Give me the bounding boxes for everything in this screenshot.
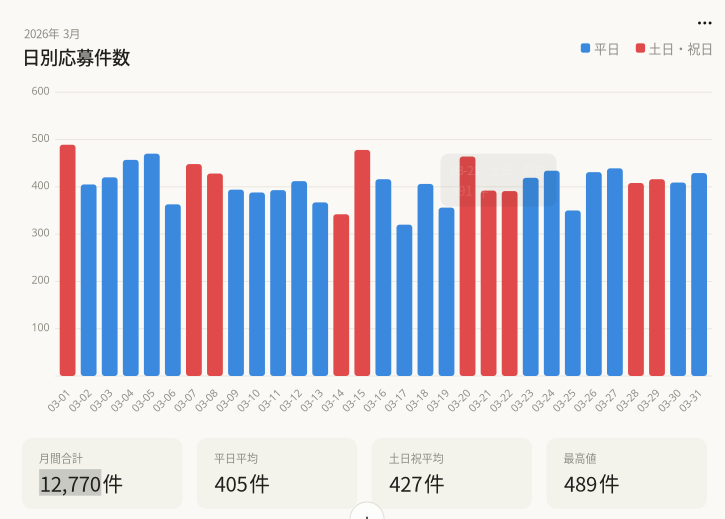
staticText: 件 [599,468,620,498]
staticText: 土日・祝日 [649,39,714,57]
staticText: 03-23 [508,393,535,407]
staticText: 03-12 [277,393,304,407]
staticText: 405 [214,468,247,498]
staticText: 600 [31,83,49,98]
staticText: 03-05 [129,393,156,407]
staticText: 03-15 [340,393,367,407]
staticText: 最高値 [563,450,596,466]
staticText: 03-17 [382,393,409,407]
staticText: 03-27 [592,393,619,407]
staticText: 03-16 [361,393,388,407]
staticText: 03-21 土日・祝日 [452,162,546,178]
button[interactable]: 月間合計 [22,438,182,509]
staticText: 03-18 [403,393,430,407]
button[interactable]: 最高値 [546,438,707,509]
button[interactable]: 土日・祝日 [636,38,725,58]
button[interactable]: 平日平均 [197,438,357,509]
staticText: 03-10 [235,393,262,407]
staticText: 件 [249,468,270,498]
button[interactable]: 下へスクロール [347,499,387,519]
staticText: 件 [102,468,123,498]
staticText: 03-26 [571,393,598,407]
staticText: 03-06 [150,393,177,407]
staticText: 03-22 [487,393,514,407]
staticText: 500 [31,131,49,145]
staticText: 400 [31,178,49,192]
staticText: 391 件 [452,181,489,199]
staticText: 300 [31,225,49,239]
staticText: 03-13 [298,393,325,407]
staticText: 03-29 [635,393,662,407]
staticText: 03-30 [656,393,683,407]
staticText: 03-04 [108,393,135,407]
staticText: 03-20 [445,393,472,407]
staticText: 03-28 [614,393,641,407]
staticText: 03-19 [424,393,451,407]
staticText: 平日平均 [214,450,258,466]
staticText: 日別応募件数 [22,43,130,70]
staticText: 03-03 [87,393,114,407]
button[interactable]: その他のオプション [690,10,720,36]
staticText: 件 [424,468,445,498]
staticText: 100 [31,320,49,334]
staticText: 03-24 [529,393,556,407]
staticText: 03-25 [550,393,577,407]
staticText: 平日 [594,39,620,57]
staticText: 12,770 [40,468,101,498]
staticText: 03-07 [171,393,198,407]
staticText: 200 [31,273,49,287]
button[interactable]: 土日祝平均 [372,438,532,509]
staticText: 427 [389,468,422,498]
staticText: 03-21 [466,393,493,407]
staticText: 03-08 [193,393,220,407]
staticText: 489 [564,468,597,498]
staticText: 2026年 3月 [24,25,81,42]
button[interactable]: 平日 [581,38,641,58]
staticText: 03-14 [319,393,346,407]
staticText: 03-02 [66,393,93,407]
staticText: 03-09 [214,393,241,407]
staticText: 03-11 [256,393,283,407]
staticText: 月間合計 [39,450,83,466]
staticText: 03-01 [45,393,72,407]
staticText: 土日祝平均 [389,450,444,466]
staticText: 03-31 [677,393,704,407]
